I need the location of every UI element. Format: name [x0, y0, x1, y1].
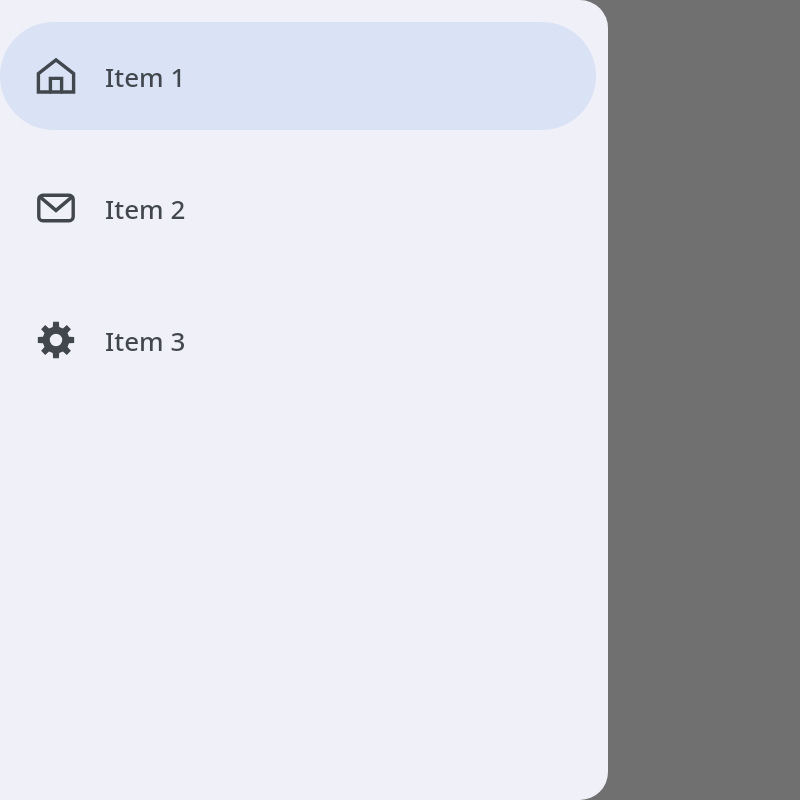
- staticText: Item 3: [105, 323, 186, 358]
- staticText: Item 2: [105, 191, 186, 226]
- button[interactable]: Item 1: [0, 22, 596, 130]
- button[interactable]: Item 3: [0, 286, 596, 394]
- staticText: Item 1: [105, 59, 186, 94]
- button[interactable]: Item 2: [0, 154, 596, 262]
